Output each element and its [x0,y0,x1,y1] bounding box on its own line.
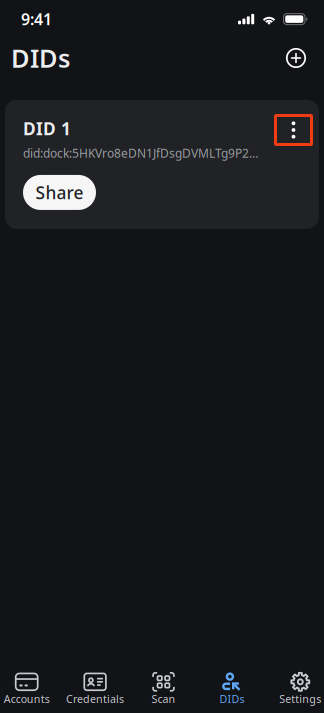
button[interactable]: Add DID [281,43,311,73]
button[interactable]: Scan [129,655,198,713]
staticText: 9:41 [21,8,52,30]
staticText: DID 1 [23,117,71,140]
button[interactable]: Share [23,175,96,210]
staticText: Share [35,181,83,204]
button[interactable]: DIDs [198,655,266,713]
staticText: did:dock:5HKVro8eDN1JfDsgDVMLTg9P2… [23,145,258,161]
button[interactable]: More options [274,114,313,146]
staticText: Settings [279,692,321,706]
staticText: Scan [151,692,175,706]
staticText: Accounts [4,692,50,706]
staticText: Credentials [66,692,124,706]
staticText: DIDs [219,692,244,706]
staticText: DIDs [11,41,70,75]
button[interactable]: Accounts [0,655,61,713]
button[interactable]: Credentials [61,655,129,713]
button[interactable]: Settings [266,655,324,713]
